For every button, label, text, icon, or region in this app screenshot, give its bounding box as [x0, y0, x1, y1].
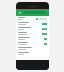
button[interactable]: Back	[21, 64, 24, 67]
button[interactable]: Recents	[42, 64, 45, 67]
button[interactable]	[16, 51, 49, 56]
button[interactable]	[16, 46, 49, 51]
button[interactable]	[16, 41, 49, 46]
button[interactable]	[16, 21, 49, 26]
button[interactable]	[16, 36, 49, 41]
button[interactable]	[16, 26, 49, 31]
button[interactable]: Menu	[18, 11, 22, 15]
button[interactable]: Home	[32, 64, 35, 67]
button[interactable]	[16, 31, 49, 36]
